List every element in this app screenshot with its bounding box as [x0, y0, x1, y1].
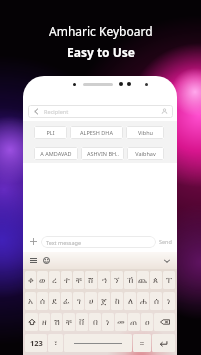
staticText: ፐ — [166, 276, 172, 285]
button[interactable]: ጰ — [150, 271, 162, 289]
button[interactable]: Contacts — [156, 105, 173, 118]
staticText: ። — [140, 339, 144, 348]
button[interactable]: ደ — [49, 292, 60, 310]
button[interactable]: ጨ — [137, 271, 149, 289]
staticText: 123 — [30, 338, 43, 348]
staticText: ALPESH DHA — [80, 129, 113, 136]
button[interactable]: ተ — [61, 271, 72, 289]
button[interactable]: ቀ — [25, 271, 36, 289]
button[interactable]: ለ — [124, 292, 136, 310]
staticText: ነ — [167, 297, 171, 306]
button[interactable]: ሀ — [85, 292, 97, 310]
button[interactable]: ጠ — [128, 313, 140, 331]
staticText: Send — [159, 238, 172, 245]
button[interactable]: ASHVIN BH.. — [81, 147, 124, 160]
staticText: ከ — [115, 297, 120, 306]
button[interactable]: ዘ — [39, 313, 50, 331]
staticText: ዘ — [42, 318, 47, 327]
button[interactable]: ሰ — [37, 292, 48, 310]
staticText: ጨ — [138, 276, 148, 285]
staticText: መ — [117, 318, 125, 327]
button[interactable]: ኘ — [111, 271, 123, 289]
staticText: ኀ — [102, 276, 107, 285]
button[interactable]: ሸ — [85, 271, 97, 289]
staticText: ሰ — [40, 297, 45, 306]
button[interactable]: ሽ — [51, 313, 62, 331]
button[interactable]: ጀ — [98, 292, 110, 310]
button[interactable]: ALPESH DHA — [70, 126, 123, 139]
staticText: ቀ — [28, 276, 34, 285]
button[interactable]: Space — [64, 334, 132, 352]
staticText: ተ — [64, 276, 70, 285]
button[interactable]: 123 — [25, 334, 47, 352]
button[interactable]: Enter — [152, 334, 175, 352]
button[interactable]: Text message — [41, 236, 156, 248]
button[interactable]: ኀ — [98, 271, 110, 289]
staticText: Vaibhav — [135, 150, 156, 157]
staticText: ረ — [52, 276, 57, 285]
button[interactable]: ቨ — [76, 313, 88, 331]
button[interactable]: አ — [25, 292, 36, 310]
staticText: Recipient — [44, 108, 69, 116]
staticText: ጠ — [130, 318, 138, 327]
staticText: ሸ — [88, 276, 94, 285]
button[interactable]: Send — [158, 238, 173, 245]
button[interactable]: ፈ — [61, 292, 72, 310]
staticText: ቸ — [76, 276, 82, 285]
button[interactable]: A AMDAVAD — [34, 147, 78, 160]
staticText: PLI — [46, 129, 55, 136]
button[interactable]: ፣ — [48, 334, 63, 352]
button[interactable]: መ — [115, 313, 127, 331]
staticText: ሰ — [154, 297, 159, 306]
button[interactable]: Emoji — [41, 255, 52, 266]
staticText: ሀ — [89, 297, 94, 306]
staticText: Vibhu — [138, 129, 153, 136]
button[interactable]: PLI — [34, 126, 67, 139]
button[interactable]: Collapse keyboard — [161, 255, 172, 266]
button[interactable]: ሐ — [137, 292, 149, 310]
staticText: ገ — [77, 297, 81, 306]
staticText: ደ — [52, 297, 57, 306]
button[interactable]: Menu — [28, 255, 39, 266]
button[interactable]: ረ — [49, 271, 60, 289]
button[interactable]: Shift — [25, 313, 38, 331]
button[interactable]: Vaibhav — [127, 147, 164, 160]
button[interactable]: Add attachment — [27, 235, 40, 248]
button[interactable]: ከ — [111, 292, 123, 310]
button[interactable]: ነ — [102, 313, 114, 331]
button[interactable]: ። — [133, 334, 151, 352]
staticText: A AMDAVAD — [40, 150, 72, 157]
staticText: ጀ — [101, 297, 107, 306]
staticText: ጰ — [153, 276, 159, 285]
button[interactable]: በ — [89, 313, 101, 331]
staticText: ወ — [39, 276, 46, 285]
staticText: Amharic Keyboard — [49, 23, 153, 39]
staticText: Easy to Use — [67, 44, 135, 60]
button[interactable]: ኸ — [124, 271, 136, 289]
button[interactable]: ነ — [163, 292, 175, 310]
button[interactable]: ቸ — [73, 271, 84, 289]
button[interactable]: ገ — [73, 292, 84, 310]
staticText: ASHVIN BH.. — [87, 150, 119, 157]
staticText: ቸ — [66, 318, 72, 327]
staticText: አ — [28, 297, 33, 306]
staticText: ኸ — [127, 276, 134, 285]
staticText: ኘ — [114, 276, 120, 285]
staticText: ሐ — [140, 297, 147, 306]
button[interactable]: Backspace — [154, 313, 175, 331]
button[interactable]: ዐ — [141, 313, 153, 331]
staticText: ቨ — [79, 318, 85, 327]
button[interactable]: ቸ — [63, 313, 75, 331]
staticText: ሽ — [54, 318, 60, 327]
button[interactable]: Back — [28, 105, 44, 118]
staticText: Text message — [46, 239, 82, 246]
staticText: ፈ — [63, 297, 70, 306]
staticText: ለ — [128, 297, 133, 306]
button[interactable]: ሰ — [150, 292, 162, 310]
staticText: ነ — [106, 318, 110, 327]
button[interactable]: Vibhu — [126, 126, 164, 139]
button[interactable]: ወ — [37, 271, 48, 289]
staticText: ዐ — [145, 318, 150, 327]
button[interactable]: ፐ — [163, 271, 175, 289]
staticText: ፣ — [54, 339, 58, 348]
